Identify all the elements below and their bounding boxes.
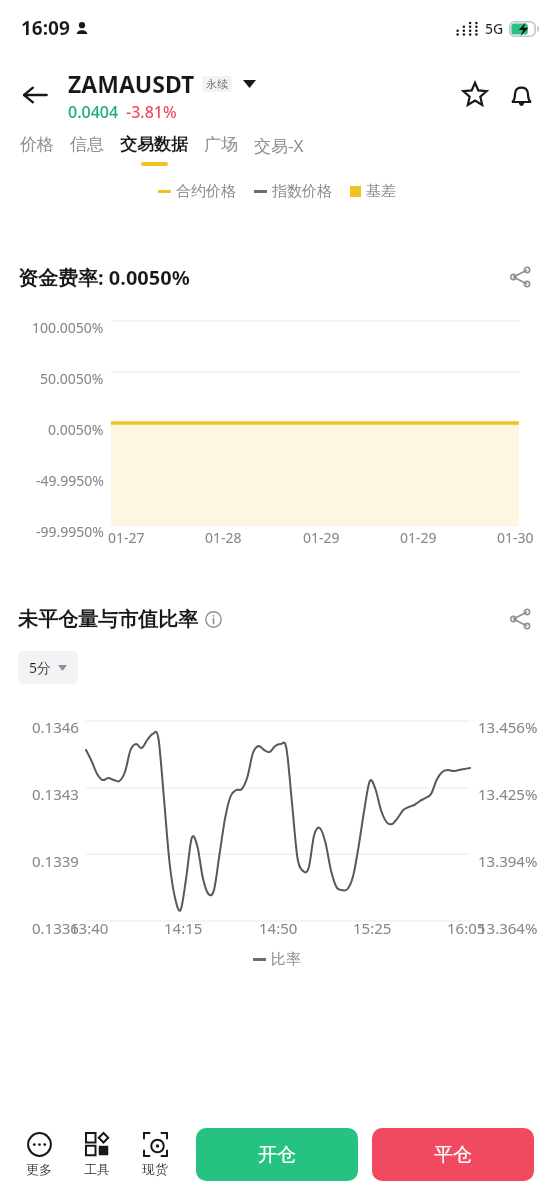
button[interactable]: Tools [76,1132,118,1177]
button[interactable]: Share [500,257,540,297]
staticText: 合约价格 [176,182,236,201]
staticText: ZAMAUSDT [68,68,195,99]
button[interactable]: 广场 [196,134,246,166]
staticText: 5分 [29,658,52,677]
button[interactable]: Share [500,599,540,639]
button[interactable]: 交易-X [246,134,312,168]
staticText: 14:50 [259,918,298,938]
staticText: 01-28 [205,528,242,547]
button[interactable]: Spot [134,1132,176,1177]
staticText: 永续 [206,77,228,91]
button[interactable]: 交易数据 [112,134,196,166]
staticText: -3.81% [126,101,177,123]
staticText: 01-29 [400,528,437,547]
staticText: 0.1343 [32,784,79,804]
staticText: 13.394% [478,851,538,871]
staticText: 平仓 [434,1143,472,1167]
staticText: 01-30 [497,528,534,547]
staticText: 交易-X [254,134,304,157]
staticText: 14:15 [164,918,203,938]
staticText: 未平仓量与市值比率 [18,607,198,632]
staticText: 13.364% [478,918,538,938]
staticText: 16:09 [21,15,70,41]
staticText: -49.9950% [36,471,104,490]
staticText: 0.0404 [68,101,119,123]
staticText: 0.1336 [32,918,79,938]
staticText: 比率 [271,950,301,969]
staticText: 0.1346 [32,717,79,737]
button[interactable]: 价格 [12,134,62,166]
staticText: 13:40 [70,918,109,938]
button[interactable]: 平仓 [372,1128,534,1181]
staticText: 价格 [20,134,54,155]
staticText: 100.0050% [32,318,104,337]
staticText: 15:25 [353,918,392,938]
button[interactable]: Back [8,68,62,122]
staticText: 工具 [84,1161,110,1177]
staticText: 资金费率: 0.0050% [18,264,190,291]
staticText: 01-27 [108,528,145,547]
staticText: 13.425% [478,784,538,804]
staticText: 16:05 [447,918,486,938]
button[interactable]: More [18,1132,60,1177]
button[interactable]: Notifications [498,72,544,118]
staticText: -99.9950% [36,522,104,541]
staticText: 更多 [26,1161,52,1177]
staticText: 0.0050% [48,420,104,439]
staticText: 5G [485,19,504,38]
staticText: 交易数据 [120,134,188,155]
button[interactable]: 5分 [18,651,78,684]
staticText: 指数价格 [272,182,332,201]
staticText: 13.456% [478,717,538,737]
staticText: 信息 [70,134,104,155]
staticText: 01-29 [303,528,340,547]
staticText: 0.1339 [32,851,79,871]
staticText: 开仓 [258,1143,296,1167]
button[interactable]: Switch contract [238,73,260,95]
button[interactable]: 信息 [62,134,112,166]
button[interactable]: Favorite [452,72,498,118]
staticText: 广场 [204,134,238,155]
staticText: 基差 [366,182,396,201]
staticText: 现货 [142,1161,168,1177]
button[interactable]: 开仓 [196,1128,358,1181]
staticText: 50.0050% [40,369,104,388]
